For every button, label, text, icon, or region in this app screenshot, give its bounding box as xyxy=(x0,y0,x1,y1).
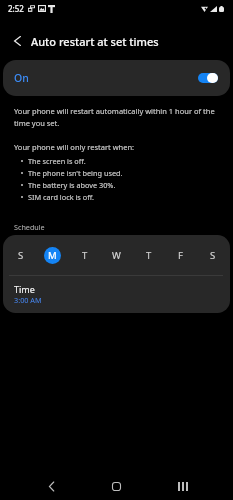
staticText: S xyxy=(18,249,24,262)
button[interactable]: S xyxy=(12,247,29,264)
button[interactable]: F xyxy=(172,247,189,264)
staticText: 2:52 xyxy=(8,3,24,14)
button[interactable]: Time xyxy=(3,276,230,305)
button[interactable]: S xyxy=(204,247,221,264)
button[interactable]: On xyxy=(3,60,230,96)
staticText: Your phone will restart automatically wi… xyxy=(14,106,222,128)
staticText: Schedule xyxy=(14,222,45,232)
staticText: 3:00 AM xyxy=(14,295,42,305)
staticText: On xyxy=(14,71,29,85)
staticText: Your phone will only restart when: xyxy=(14,142,135,152)
staticText: T xyxy=(82,249,88,262)
button[interactable]: T xyxy=(76,247,93,264)
button[interactable]: M xyxy=(44,247,61,264)
staticText: SIM card lock is off. xyxy=(28,192,94,202)
button[interactable]: T xyxy=(140,247,157,264)
button[interactable]: W xyxy=(108,247,125,264)
staticText: M xyxy=(48,249,57,262)
staticText: Time xyxy=(14,283,35,295)
button[interactable]: Back xyxy=(34,469,69,500)
staticText: F xyxy=(178,249,183,262)
staticText: W xyxy=(112,249,121,262)
staticText: T xyxy=(146,249,152,262)
button[interactable]: Navigate up xyxy=(6,30,29,52)
staticText: The phone isn't being used. xyxy=(28,168,123,178)
staticText: Auto restart at set times xyxy=(31,34,159,49)
button[interactable]: Home xyxy=(99,469,134,500)
staticText: S xyxy=(210,249,216,262)
staticText: The battery is above 30%. xyxy=(28,180,116,190)
staticText: The screen is off. xyxy=(28,156,86,166)
button[interactable]: Recent apps xyxy=(165,469,200,500)
